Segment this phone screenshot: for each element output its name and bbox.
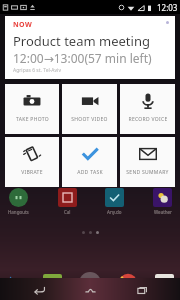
button[interactable]: Back [26, 278, 52, 300]
staticText: ADD TASK [77, 169, 103, 176]
staticText: 12:00→13:00(57 min left) [13, 50, 152, 66]
button[interactable]: SHOOT VIDEO [62, 84, 117, 134]
staticText: SEND SUMMARY [126, 169, 169, 176]
button[interactable]: SEND SUMMARY [120, 137, 175, 187]
button[interactable]: TAKE PHOTO [5, 84, 59, 134]
staticText: Hangouts [8, 209, 29, 215]
button[interactable]: VIBRATE [5, 137, 59, 187]
staticText: Agripas 6 st. Tel-Aviv [13, 67, 61, 74]
staticText: Any.do [107, 209, 122, 215]
button[interactable]: NOW [5, 16, 175, 79]
staticText: NOW [13, 20, 33, 30]
button[interactable]: ADD TASK [62, 137, 117, 187]
staticText: Weather [154, 209, 172, 215]
staticText: TAKE PHOTO [16, 116, 49, 123]
staticText: SHOOT VIDEO [71, 116, 108, 123]
staticText: 12:03 [157, 2, 178, 13]
staticText: RECORD VOICE [128, 116, 168, 123]
staticText: Product team meeting [13, 32, 150, 50]
button[interactable]: Home [77, 278, 103, 300]
button[interactable]: Recents [129, 278, 155, 300]
staticText: VIBRATE [21, 169, 43, 176]
button[interactable]: RECORD VOICE [120, 84, 175, 134]
staticText: Cal [64, 209, 71, 215]
